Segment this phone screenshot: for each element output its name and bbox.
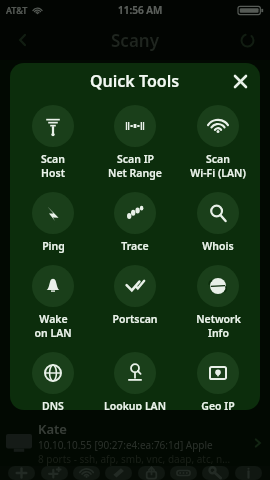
staticText: on LAN [34, 326, 72, 340]
staticText: Host [41, 166, 65, 180]
staticText: 11:56 AM [118, 3, 163, 17]
button[interactable]: Network [178, 265, 258, 340]
button[interactable]: Scan [13, 105, 93, 180]
button[interactable]: Geo IP [178, 352, 258, 410]
button[interactable]: Edit [105, 466, 132, 480]
button[interactable]: Add scan [41, 466, 68, 480]
staticText: Net Range [108, 166, 162, 180]
button[interactable]: Wake [13, 265, 93, 340]
button[interactable]: Refresh [232, 25, 262, 55]
staticText: Scany [111, 29, 159, 52]
button[interactable]: More [170, 466, 197, 480]
button[interactable]: Close [226, 67, 254, 95]
button[interactable]: Whois [178, 192, 258, 253]
staticText: AT&T [6, 4, 28, 16]
staticText: Network [196, 312, 241, 326]
button[interactable]: Scan IP [95, 105, 175, 180]
button[interactable]: Share [138, 466, 165, 480]
staticText: 8 ports - ssh, afp, smb, vnc, daap, atc,… [38, 452, 231, 466]
staticText: Wake [39, 312, 68, 326]
button[interactable]: Lookup LAN [95, 352, 175, 410]
staticText: Lookup LAN [104, 399, 166, 410]
staticText: Wi-Fi (LAN) [190, 166, 246, 180]
button[interactable]: Back [8, 25, 38, 55]
staticText: Geo IP [201, 399, 235, 410]
button[interactable]: Scan [178, 105, 258, 180]
button[interactable]: DNS [13, 352, 93, 410]
button[interactable]: Add [8, 466, 35, 480]
button[interactable]: Info [235, 466, 262, 480]
staticText: Scan [41, 152, 65, 166]
staticText: 10.10.10.55 [90:27:e4:ea:76:1d] Apple [38, 438, 213, 452]
staticText: Scan IP [117, 152, 154, 166]
button[interactable]: Wi-Fi [73, 466, 100, 480]
staticText: Info [208, 326, 229, 340]
button[interactable]: Trace [95, 192, 175, 253]
button[interactable]: Tools [202, 466, 229, 480]
staticText: Trace [121, 239, 149, 253]
button[interactable]: Portscan [95, 265, 175, 326]
staticText: Ping [42, 239, 65, 253]
staticText: Whois [202, 239, 234, 253]
staticText: Scan [206, 152, 230, 166]
staticText: Portscan [112, 312, 158, 326]
button[interactable]: Ping [13, 192, 93, 253]
staticText: Quick Tools [90, 70, 180, 92]
staticText: Kate [38, 420, 67, 438]
button[interactable]: Kate [6, 420, 264, 466]
staticText: DNS [42, 399, 64, 410]
